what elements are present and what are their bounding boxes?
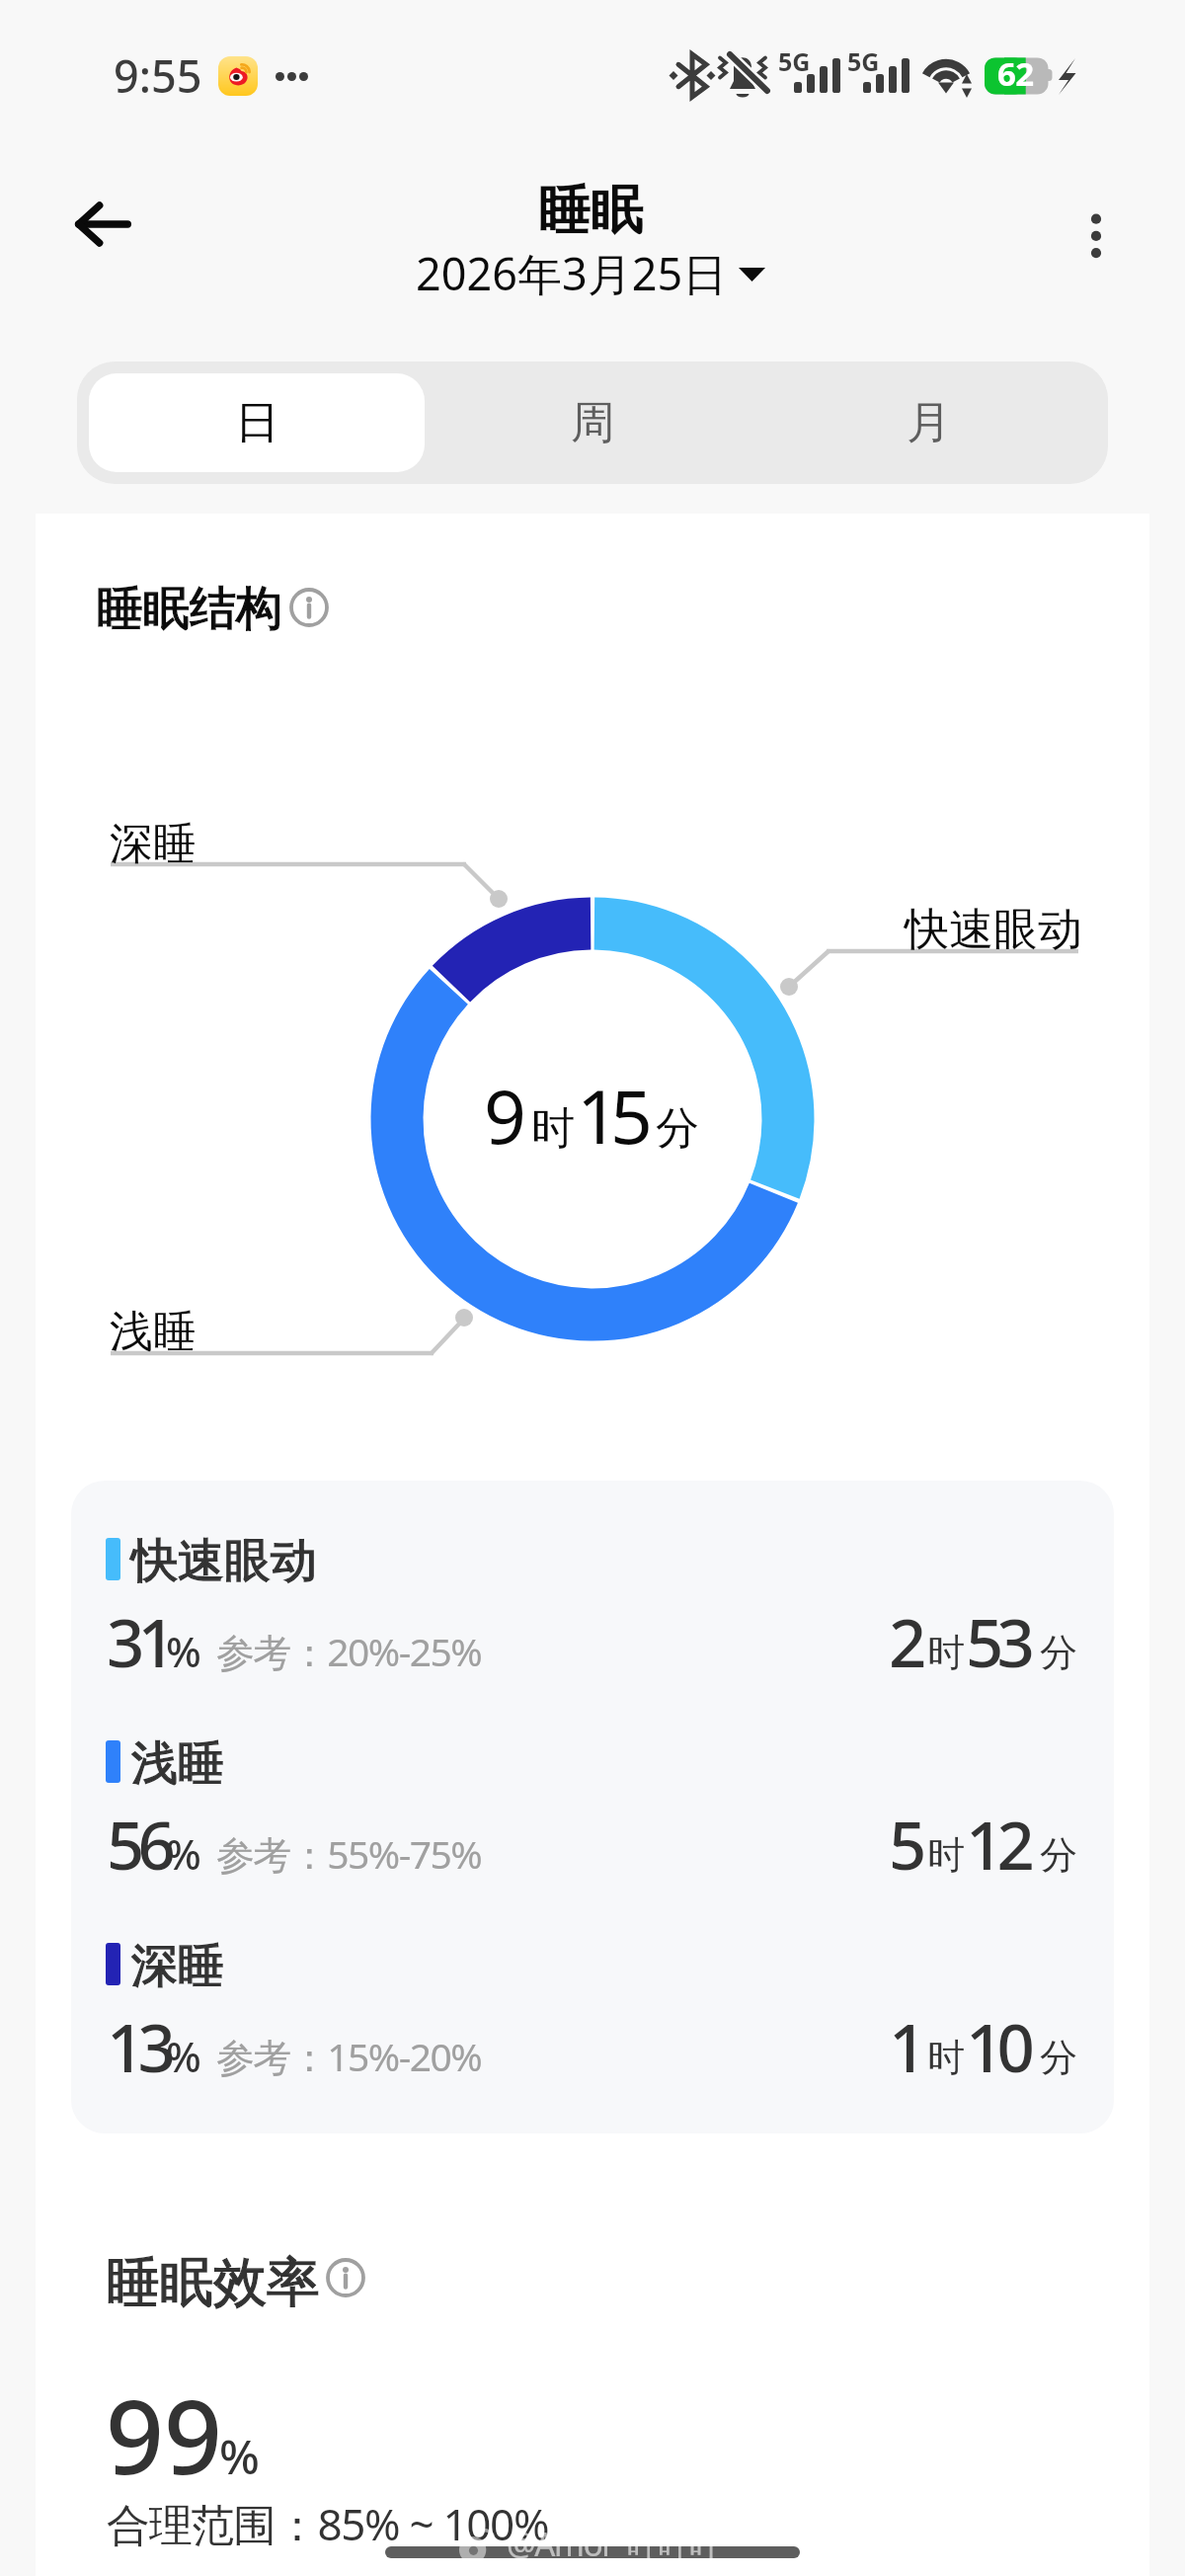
staticText: 56 xyxy=(107,1799,170,1889)
staticText: 时 xyxy=(531,1101,575,1156)
button[interactable]: More options xyxy=(1047,189,1145,263)
staticText: 10 xyxy=(966,2001,1029,2091)
staticText: 31 xyxy=(107,1596,170,1686)
staticText: 快速眼动 xyxy=(131,1532,317,1590)
staticText: 睡眠 xyxy=(538,178,643,244)
staticText: 深睡 xyxy=(131,1937,224,1995)
staticText: 浅睡 xyxy=(110,1305,197,1359)
staticText: 5G xyxy=(847,44,880,78)
staticText: 快速眼动 xyxy=(905,902,1082,958)
staticText: 深睡 xyxy=(131,1937,224,1995)
staticText: 时 xyxy=(927,2034,965,2081)
staticText: 分 xyxy=(1040,1629,1077,1676)
staticText: 日 xyxy=(235,395,279,451)
staticText: 2026年3月25日 xyxy=(416,243,728,303)
staticText: 分 xyxy=(1040,2034,1077,2081)
staticText: 浅睡 xyxy=(131,1734,224,1793)
staticText: 5G xyxy=(778,44,811,78)
staticText: % xyxy=(166,1623,201,1679)
staticText: 1 xyxy=(889,2001,920,2091)
button[interactable]: Back xyxy=(55,175,152,274)
button[interactable]: 月 xyxy=(760,373,1096,472)
button[interactable]: 周 xyxy=(425,373,760,472)
staticText: @Amor_叶叶叶 xyxy=(507,2522,721,2566)
staticText: 深睡 xyxy=(110,817,197,871)
staticText: 9:55 xyxy=(114,45,202,106)
staticText: % xyxy=(219,2424,260,2488)
staticText: % xyxy=(166,2028,201,2084)
staticText: 分 xyxy=(1040,1831,1077,1879)
staticText: 时 xyxy=(927,1629,965,1676)
staticText: 合理范围：85% ~ 100% xyxy=(107,2494,549,2553)
staticText: 9 xyxy=(484,1065,526,1166)
staticText: 参考：15%-20% xyxy=(216,2030,482,2082)
staticText: 分 xyxy=(656,1101,699,1156)
staticText: 浅睡 xyxy=(131,1734,224,1793)
staticText: 周 xyxy=(571,395,615,451)
staticText: 参考：20%-25% xyxy=(216,1625,482,1677)
button[interactable]: 日 xyxy=(89,373,425,472)
staticText: 62 xyxy=(997,51,1034,96)
staticText: 5 xyxy=(889,1799,920,1889)
staticText: % xyxy=(166,1825,201,1882)
staticText: 12 xyxy=(966,1799,1029,1889)
staticText: 睡眠效率 xyxy=(107,2249,320,2316)
staticText: 13 xyxy=(107,2001,170,2091)
staticText: 参考：55%-75% xyxy=(216,1827,482,1880)
staticText: 月 xyxy=(907,395,951,451)
staticText: 99 xyxy=(106,2366,222,2504)
staticText: 快速眼动 xyxy=(131,1532,317,1590)
staticText: 53 xyxy=(966,1596,1029,1686)
staticText: 2 xyxy=(889,1596,920,1686)
staticText: 睡眠结构 xyxy=(97,580,282,638)
staticText: 时 xyxy=(927,1831,965,1879)
staticText: 睡眠效率 xyxy=(107,2249,320,2316)
staticText: 睡眠结构 xyxy=(97,580,282,638)
staticText: 15 xyxy=(577,1065,644,1166)
